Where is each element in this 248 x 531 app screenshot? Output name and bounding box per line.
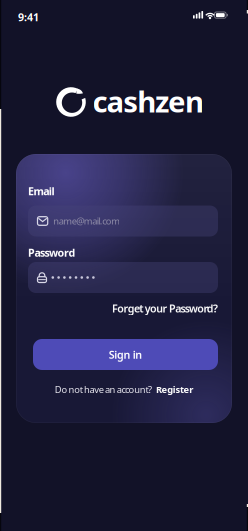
staticText: Sign in <box>109 347 142 362</box>
staticText: Do not have an account? <box>55 383 152 396</box>
button[interactable]: Sign in <box>33 339 218 370</box>
button[interactable]: Register <box>156 383 193 396</box>
staticText: Password <box>28 245 75 260</box>
staticText: name@mail.com <box>53 215 120 227</box>
button[interactable]: Forget your Password? <box>112 301 218 315</box>
staticText: 9:41 <box>18 10 39 24</box>
button[interactable] <box>28 262 218 293</box>
staticText: Forget your Password? <box>112 301 218 315</box>
staticText: Register <box>156 383 193 396</box>
staticText: cashzen <box>92 81 204 120</box>
button[interactable]: name@mail.com <box>28 205 218 236</box>
staticText: Email <box>28 184 54 198</box>
